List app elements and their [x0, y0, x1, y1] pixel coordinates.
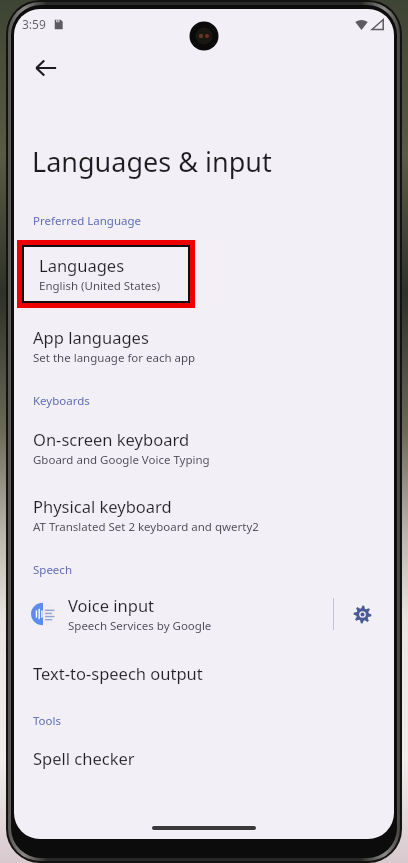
staticText: AT Translated Set 2 keyboard and qwerty2	[33, 519, 259, 535]
button[interactable]: Languages	[24, 247, 188, 301]
staticText: Physical keyboard	[33, 495, 172, 517]
staticText: Keyboards	[33, 393, 90, 409]
button[interactable]: App languages	[14, 324, 394, 368]
staticText: Voice input	[68, 594, 155, 616]
staticText: On-screen keyboard	[33, 428, 190, 450]
button[interactable]: Voice input	[14, 590, 333, 638]
staticText: Set the language for each app	[33, 350, 196, 366]
button[interactable]: Text-to-speech output	[14, 660, 394, 686]
staticText: Preferred Language	[33, 213, 141, 229]
button[interactable]: Physical keyboard	[14, 493, 394, 537]
button[interactable]: Back	[26, 48, 66, 88]
staticText: Speech Services by Google	[68, 618, 212, 634]
staticText: App languages	[33, 326, 149, 348]
button[interactable]: On-screen keyboard	[14, 426, 394, 470]
button[interactable]: Spell checker	[14, 745, 394, 771]
staticText: Speech	[33, 562, 72, 578]
staticText: Languages	[39, 254, 125, 276]
staticText: Tools	[33, 713, 61, 729]
staticText: English (United States)	[39, 278, 161, 294]
button[interactable]: Voice input settings	[334, 590, 390, 638]
staticText: Languages & input	[32, 143, 272, 180]
staticText: Gboard and Google Voice Typing	[33, 452, 210, 468]
staticText: Text-to-speech output	[33, 662, 203, 684]
staticText: Spell checker	[33, 747, 135, 769]
staticText: 3:59	[22, 16, 46, 32]
